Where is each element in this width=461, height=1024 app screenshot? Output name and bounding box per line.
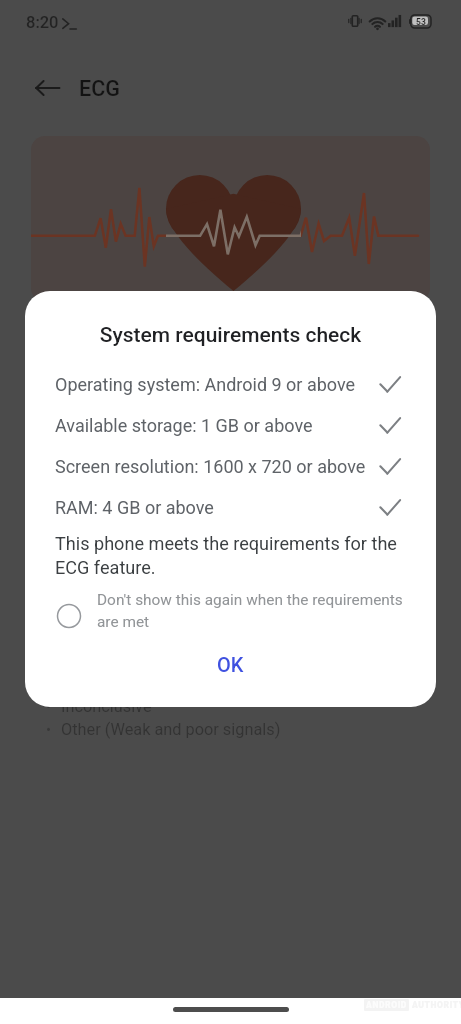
button[interactable]: OK [203,649,258,680]
button[interactable]: Back [24,64,72,112]
staticText: Inconclusive [61,697,152,716]
staticText: • [46,698,52,716]
staticText: AUTHORITY [412,1000,461,1010]
staticText: RAM: 4 GB or above [55,497,379,518]
staticText: OK [217,653,244,676]
button[interactable]: Don't show this again when the requireme… [57,591,423,631]
staticText: Don't show this again when the requireme… [97,591,403,631]
staticText: Screen resolution: 1600 x 720 or above [55,456,379,477]
staticText: ANDROID [366,1000,407,1010]
staticText: Available storage: 1 GB or above [55,415,379,436]
staticText: ECG [79,76,120,101]
staticText: Other (Weak and poor signals) [61,720,281,739]
staticText: 8:20 [26,13,59,32]
staticText: System requirements check [25,323,436,348]
staticText: • [46,721,52,739]
staticText: 53 [416,17,426,27]
staticText: Operating system: Android 9 or above [55,374,379,395]
staticText: This phone meets the requirements for th… [55,533,397,579]
